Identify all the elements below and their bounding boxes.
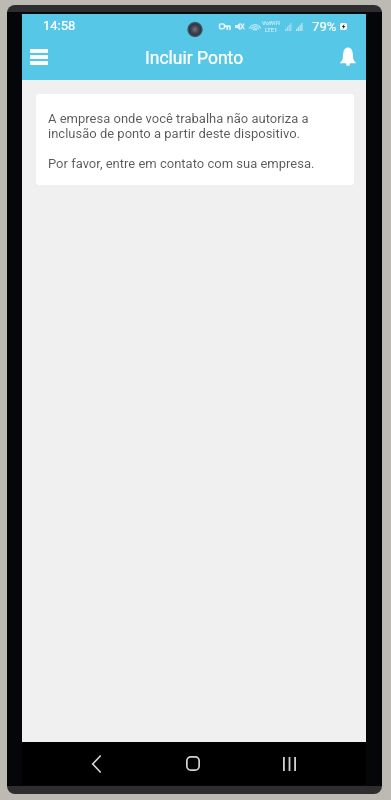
- button[interactable]: Menu: [17, 37, 61, 77]
- button[interactable]: Back: [74, 742, 118, 785]
- staticText: Incluir Ponto: [145, 48, 244, 69]
- button[interactable]: Home: [171, 742, 215, 785]
- staticText: LTE1: [265, 27, 278, 34]
- staticText: VoWiFi: [262, 20, 281, 27]
- button[interactable]: Notifications: [326, 36, 370, 76]
- button[interactable]: Recents: [267, 742, 311, 785]
- staticText: 14:58: [43, 18, 76, 33]
- staticText: 79%: [312, 19, 337, 34]
- staticText: A empresa onde você trabalha não autoriz…: [48, 111, 342, 141]
- staticText: Por favor, entre em contato com sua empr…: [48, 156, 315, 171]
